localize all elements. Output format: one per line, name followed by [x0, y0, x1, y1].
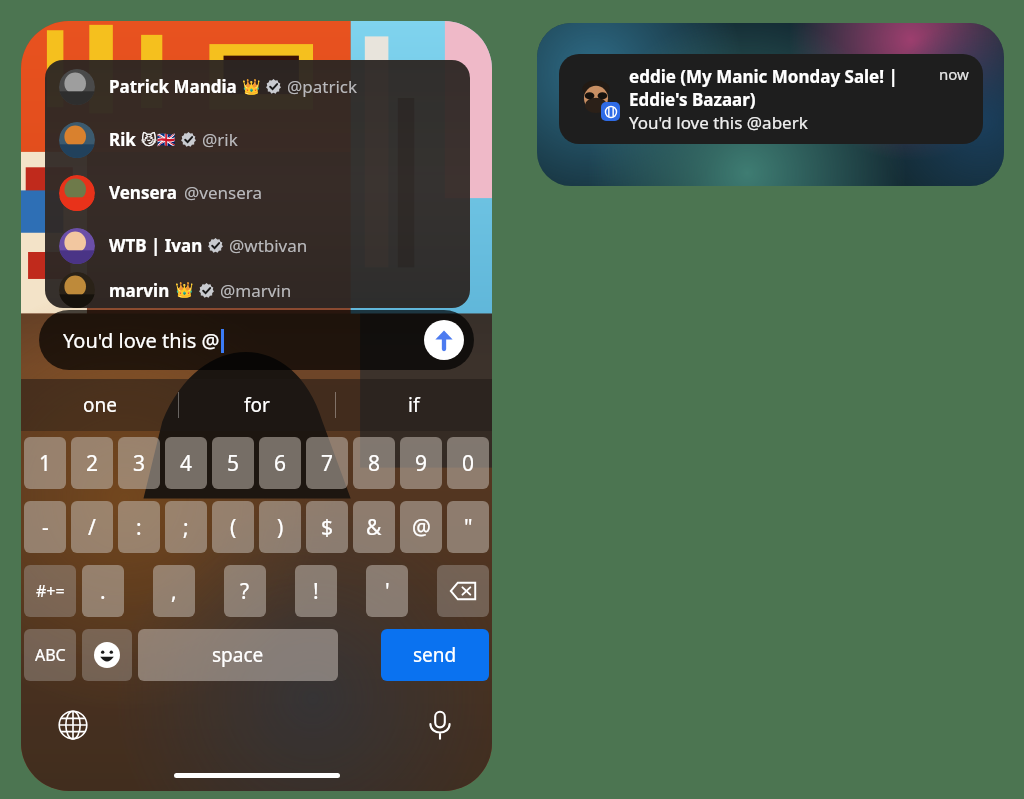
button[interactable]: 3	[118, 437, 160, 489]
staticText: '	[385, 577, 390, 606]
button[interactable]: eddie (My Manic Monday Sale! |	[559, 54, 983, 144]
staticText: You'd love this @aberk	[629, 111, 808, 134]
staticText: 👑	[175, 281, 194, 299]
button[interactable]: !	[295, 565, 337, 617]
staticText: WTB | Ivan	[109, 234, 203, 257]
button[interactable]: Vensera	[45, 166, 470, 219]
staticText: 4	[180, 449, 193, 478]
button[interactable]: Delete	[437, 565, 489, 617]
staticText: /	[88, 513, 96, 542]
button[interactable]: .	[82, 565, 124, 617]
staticText: @patrick	[287, 75, 358, 98]
staticText: :	[136, 513, 142, 542]
staticText: $	[321, 513, 334, 542]
button[interactable]: Rik	[45, 113, 470, 166]
staticText: @rik	[202, 128, 238, 151]
button[interactable]: $	[306, 501, 348, 553]
staticText: @marvin	[220, 279, 292, 302]
button[interactable]: Change keyboard	[51, 703, 95, 747]
staticText: &	[366, 513, 382, 542]
button[interactable]: 5	[212, 437, 254, 489]
staticText: @wtbivan	[229, 234, 308, 257]
button[interactable]: )	[259, 501, 301, 553]
staticText: for	[244, 392, 270, 418]
button[interactable]: ,	[153, 565, 195, 617]
staticText: 0	[462, 449, 475, 478]
button[interactable]: if	[336, 379, 492, 431]
staticText: 2	[86, 449, 99, 478]
staticText: 5	[227, 449, 240, 478]
button[interactable]: '	[366, 565, 408, 617]
staticText: Patrick Mandia	[109, 75, 237, 98]
staticText: (	[230, 513, 237, 542]
button[interactable]: for	[179, 379, 335, 431]
staticText: ,	[171, 577, 177, 606]
button[interactable]: send	[381, 629, 489, 681]
staticText: You'd love this @	[63, 327, 220, 354]
button[interactable]: &	[353, 501, 395, 553]
button[interactable]: 9	[400, 437, 442, 489]
staticText: 👑	[242, 78, 261, 96]
staticText: ?	[240, 577, 250, 606]
button[interactable]: ABC	[24, 629, 76, 681]
button[interactable]: Dictation	[418, 703, 462, 747]
staticText: 9	[415, 449, 428, 478]
staticText: Rik	[109, 128, 136, 151]
button[interactable]: 1	[24, 437, 66, 489]
button[interactable]: Send	[424, 320, 464, 360]
button[interactable]: 4	[165, 437, 207, 489]
button[interactable]: "	[447, 501, 489, 553]
button[interactable]: #+=	[24, 565, 76, 617]
staticText: "	[464, 513, 473, 542]
staticText: @vensera	[184, 181, 262, 204]
staticText: )	[277, 513, 284, 542]
staticText: ABC	[35, 644, 66, 666]
staticText: 6	[274, 449, 287, 478]
button[interactable]: :	[118, 501, 160, 553]
button[interactable]: Delete	[82, 629, 132, 681]
button[interactable]: one	[21, 379, 178, 431]
button[interactable]: -	[24, 501, 66, 553]
button[interactable]: ;	[165, 501, 207, 553]
button[interactable]: marvin	[45, 272, 470, 308]
button[interactable]: ?	[224, 565, 266, 617]
button[interactable]: Patrick Mandia	[45, 60, 470, 113]
staticText: 3	[133, 449, 146, 478]
button[interactable]: 8	[353, 437, 395, 489]
staticText: 1	[39, 449, 52, 478]
button[interactable]: space	[138, 629, 338, 681]
staticText: ;	[183, 513, 189, 542]
button[interactable]: 2	[71, 437, 113, 489]
button[interactable]: @	[400, 501, 442, 553]
staticText: 8	[368, 449, 381, 478]
button[interactable]: 0	[447, 437, 489, 489]
staticText: 7	[321, 449, 334, 478]
staticText: if	[408, 392, 420, 418]
staticText: -	[42, 513, 49, 542]
staticText: Vensera	[109, 181, 178, 204]
staticText: !	[313, 577, 319, 606]
staticText: @	[412, 513, 431, 542]
staticText: #+=	[36, 580, 65, 602]
staticText: 😼🇬🇧	[141, 131, 176, 149]
button[interactable]: 6	[259, 437, 301, 489]
button[interactable]: WTB | Ivan	[45, 219, 470, 272]
staticText: now	[939, 64, 969, 84]
button[interactable]: /	[71, 501, 113, 553]
staticText: Eddie's Bazaar)	[629, 88, 756, 111]
staticText: eddie (My Manic Monday Sale! |	[629, 65, 898, 88]
button[interactable]: (	[212, 501, 254, 553]
staticText: space	[212, 642, 264, 668]
staticText: send	[413, 642, 457, 668]
button[interactable]: 7	[306, 437, 348, 489]
staticText: marvin	[109, 279, 170, 302]
staticText: .	[100, 577, 106, 606]
staticText: one	[83, 392, 117, 418]
